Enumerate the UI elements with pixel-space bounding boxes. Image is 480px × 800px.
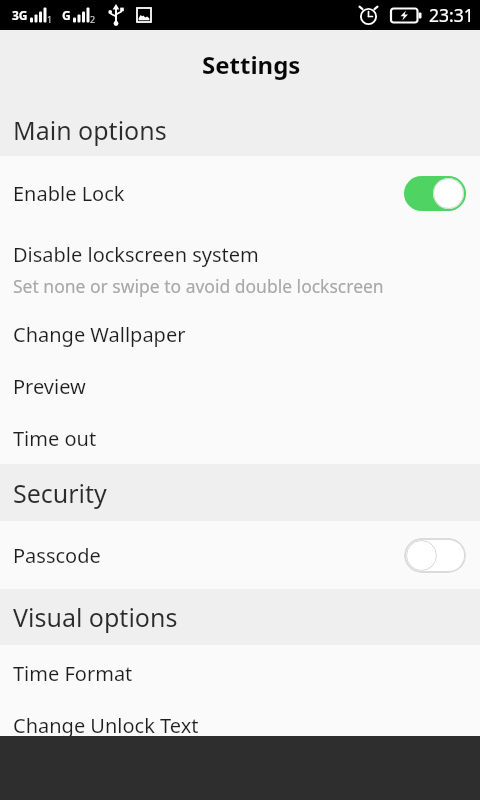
staticText: 3G [12, 7, 28, 23]
button[interactable]: Disable lockscreen system [0, 230, 480, 308]
button[interactable]: Time out [0, 412, 480, 464]
staticText: Time Format [13, 660, 133, 687]
button[interactable]: Preview [0, 360, 480, 412]
staticText: Enable Lock [13, 180, 125, 207]
staticText: Visual options [13, 600, 178, 634]
staticText: Set none or swipe to avoid double locksc… [13, 274, 384, 298]
staticText: Disable lockscreen system [13, 241, 259, 268]
staticText: Passcode [13, 542, 101, 569]
button[interactable]: Passcode [0, 521, 480, 589]
button[interactable]: Time Format [0, 645, 480, 701]
staticText: Preview [13, 373, 86, 400]
staticText: G [62, 7, 71, 23]
button[interactable]: Change Unlock Text [0, 701, 480, 749]
staticText: Settings [202, 48, 301, 81]
button[interactable] [404, 176, 466, 211]
button[interactable]: Enable Lock [0, 156, 480, 230]
staticText: Change Wallpaper [13, 321, 186, 348]
staticText: Main options [13, 113, 167, 147]
staticText: 23:31 [429, 3, 474, 27]
staticText: Time out [13, 425, 97, 452]
staticText: 2 [90, 13, 96, 25]
staticText: 1 [47, 13, 53, 25]
button[interactable] [404, 538, 466, 573]
button[interactable]: Change Wallpaper [0, 308, 480, 360]
staticText: Security [13, 476, 107, 510]
staticText: Change Unlock Text [13, 712, 199, 739]
